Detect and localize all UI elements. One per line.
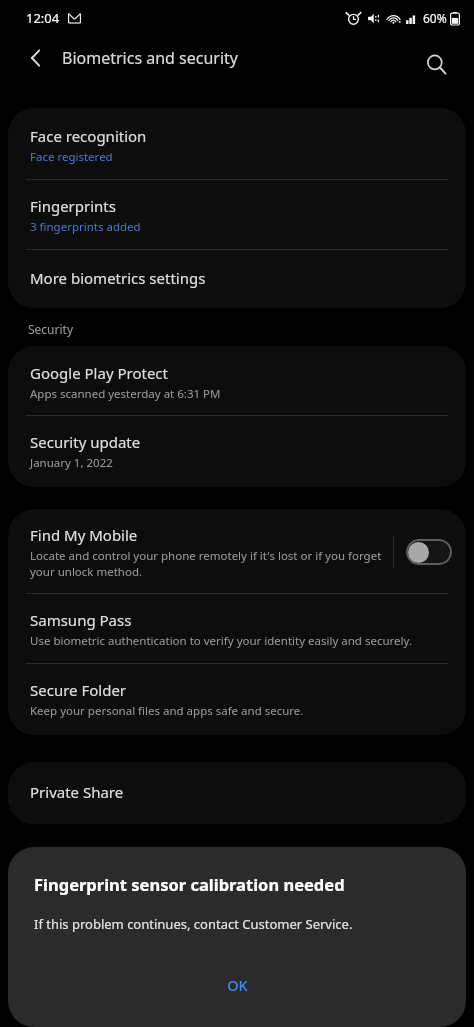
button[interactable]: Fingerprints	[8, 180, 466, 249]
staticText: Private Share	[30, 782, 124, 802]
staticText: More biometrics settings	[30, 268, 206, 288]
staticText: Security update	[30, 432, 141, 452]
button[interactable]: Google Play Protect	[8, 346, 466, 415]
staticText: Locate and control your phone remotely i…	[30, 548, 383, 579]
staticText: Google Play Protect	[30, 363, 168, 383]
button[interactable]: Face recognition	[8, 108, 466, 179]
staticText: Face recognition	[30, 126, 147, 146]
staticText: Fingerprint sensor calibration needed	[34, 873, 345, 895]
button[interactable]: Private Share	[8, 762, 466, 824]
staticText: If this problem continues, contact Custo…	[34, 915, 353, 933]
staticText: Biometrics and security	[62, 47, 239, 69]
staticText: Apps scanned yesterday at 6:31 PM	[30, 386, 221, 402]
staticText: Secure Folder	[30, 680, 127, 700]
staticText: January 1, 2022	[30, 455, 113, 471]
button[interactable]: Back	[14, 36, 58, 80]
button[interactable]: Samsung Pass	[8, 594, 466, 663]
button[interactable]: Secure Folder	[8, 664, 466, 735]
staticText: Security	[28, 321, 74, 337]
button[interactable]: More biometrics settings	[8, 250, 466, 308]
staticText: Samsung Pass	[30, 610, 132, 630]
button[interactable]: OK	[199, 967, 276, 1003]
staticText: 12:04	[26, 9, 60, 27]
button[interactable]: Search	[414, 42, 458, 86]
button[interactable]: Find My Mobile	[8, 509, 466, 593]
staticText: Face registered	[30, 149, 113, 165]
staticText: Fingerprints	[30, 196, 116, 216]
staticText: Find My Mobile	[30, 525, 138, 545]
staticText: OK	[227, 975, 248, 995]
staticText: Keep your personal files and apps safe a…	[30, 703, 304, 719]
staticText: 3 fingerprints added	[30, 219, 141, 235]
button[interactable]: Security update	[8, 416, 466, 487]
button[interactable]: Find My Mobile toggle	[406, 539, 452, 565]
staticText: Use biometric authentication to verify y…	[30, 633, 412, 649]
staticText: 60%	[423, 10, 447, 26]
